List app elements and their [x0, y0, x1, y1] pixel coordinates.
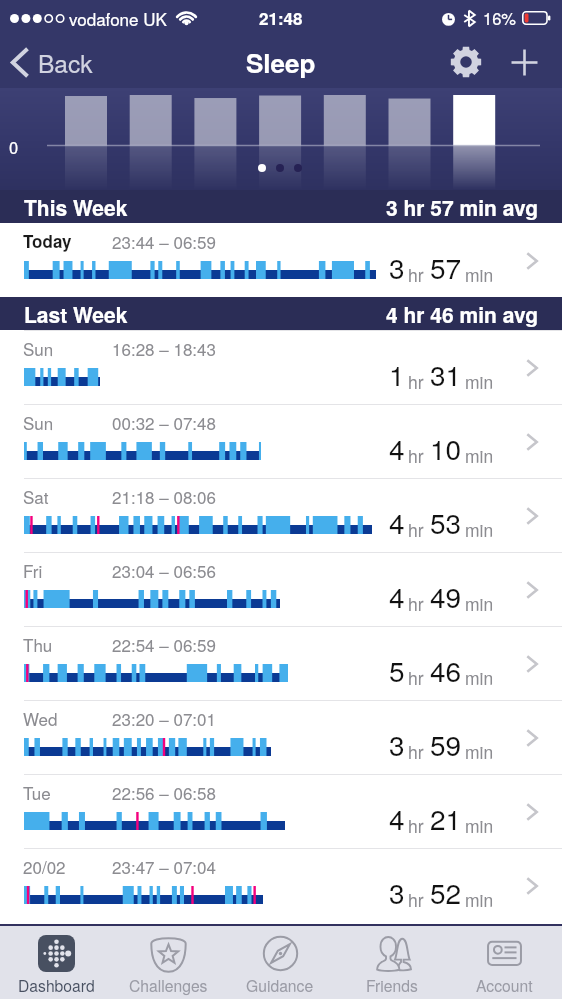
staticText: 21	[430, 798, 462, 838]
staticText: hr	[408, 369, 424, 394]
staticText: 10	[430, 428, 462, 468]
staticText: 46	[430, 650, 462, 690]
staticText: hr	[408, 262, 424, 287]
staticText: Last Week	[24, 299, 128, 329]
staticText: Today	[23, 229, 72, 253]
staticText: 23:44 – 06:59	[112, 229, 216, 253]
staticText: Thu	[23, 632, 53, 656]
staticText: 3	[389, 872, 405, 912]
button[interactable]: Back	[0, 37, 107, 88]
staticText: Fri	[23, 558, 43, 582]
staticText: 31	[430, 354, 462, 394]
staticText: 0	[9, 135, 19, 159]
staticText: Challenges	[129, 974, 208, 996]
button[interactable]: Dashboard	[0, 926, 112, 999]
staticText: min	[465, 262, 494, 287]
staticText: 20/02	[23, 854, 66, 878]
staticText: 4	[389, 502, 405, 542]
staticText: hr	[408, 813, 424, 838]
staticText: hr	[408, 517, 424, 542]
staticText: 23:20 – 07:01	[112, 706, 216, 730]
staticText: hr	[408, 887, 424, 912]
staticText: 16:28 – 18:43	[112, 336, 216, 360]
staticText: 1	[389, 354, 405, 394]
button[interactable]: Today	[0, 223, 562, 297]
button[interactable]: Guidance	[224, 926, 336, 999]
staticText: 49	[430, 576, 462, 616]
staticText: 4	[389, 798, 405, 838]
button[interactable]: Friends	[336, 926, 448, 999]
staticText: hr	[408, 591, 424, 616]
staticText: Friends	[366, 974, 418, 996]
staticText: This Week	[24, 192, 128, 222]
staticText: min	[465, 443, 494, 468]
button[interactable]: Wed	[0, 700, 562, 774]
staticText: min	[465, 887, 494, 912]
button[interactable]: Sat	[0, 478, 562, 552]
staticText: 5	[389, 650, 405, 690]
staticText: 23:47 – 07:04	[112, 854, 216, 878]
button[interactable]: Tue	[0, 774, 562, 848]
staticText: 00:32 – 07:48	[112, 410, 216, 434]
button[interactable]: Fri	[0, 552, 562, 626]
staticText: min	[465, 665, 494, 690]
staticText: 53	[430, 502, 462, 542]
staticText: vodafone UK	[69, 6, 167, 30]
staticText: 59	[430, 724, 462, 764]
staticText: Guidance	[246, 974, 314, 996]
staticText: Back	[38, 45, 93, 80]
staticText: 3 hr 57 min avg	[386, 192, 539, 222]
staticText: min	[465, 591, 494, 616]
staticText: Dashboard	[18, 974, 95, 996]
staticText: 22:56 – 06:58	[112, 780, 216, 804]
staticText: 57	[430, 247, 462, 287]
staticText: Sun	[23, 410, 54, 434]
staticText: min	[465, 369, 494, 394]
staticText: Sun	[23, 336, 54, 360]
staticText: min	[465, 517, 494, 542]
staticText: 52	[430, 872, 462, 912]
staticText: Wed	[23, 706, 58, 730]
staticText: 21:48	[259, 6, 303, 30]
staticText: 4	[389, 576, 405, 616]
button[interactable]: Account	[448, 926, 560, 999]
button[interactable]: Sun	[0, 404, 562, 478]
staticText: 22:54 – 06:59	[112, 632, 216, 656]
staticText: min	[465, 739, 494, 764]
button[interactable]: Challenges	[112, 926, 224, 999]
staticText: 3	[389, 724, 405, 764]
staticText: Tue	[23, 780, 51, 804]
staticText: hr	[408, 739, 424, 764]
staticText: hr	[408, 443, 424, 468]
button[interactable]: Settings	[442, 36, 490, 88]
button[interactable]: Sun	[0, 330, 562, 404]
button[interactable]: 20/02	[0, 848, 562, 922]
staticText: 3	[389, 247, 405, 287]
button[interactable]: Thu	[0, 626, 562, 700]
staticText: 21:18 – 08:06	[112, 484, 216, 508]
staticText: 23:04 – 06:56	[112, 558, 216, 582]
staticText: Sleep	[246, 44, 316, 81]
staticText: min	[465, 813, 494, 838]
staticText: Account	[476, 974, 533, 996]
staticText: 4 hr 46 min avg	[386, 299, 539, 329]
staticText: 4	[389, 428, 405, 468]
button[interactable]: Add	[498, 36, 551, 88]
staticText: hr	[408, 665, 424, 690]
staticText: 16%	[483, 6, 517, 30]
staticText: Sat	[23, 484, 49, 508]
